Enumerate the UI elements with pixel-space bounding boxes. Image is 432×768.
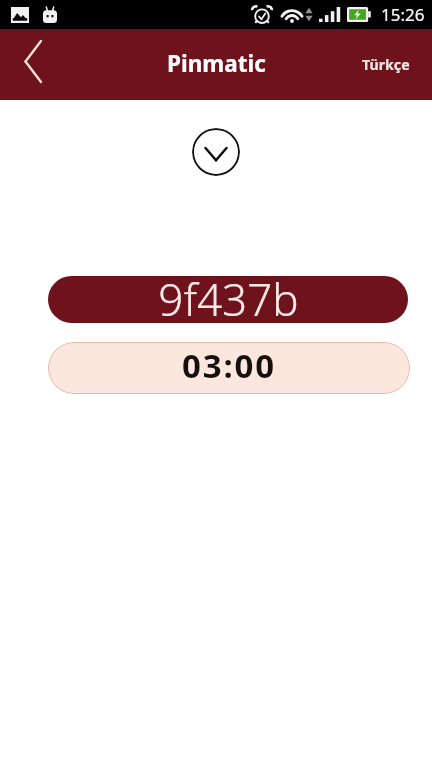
staticText: Türkçe — [362, 55, 410, 74]
staticText: Pinmatic — [167, 48, 266, 79]
staticText: 15:26 — [381, 3, 425, 26]
button[interactable]: 9f437b — [48, 276, 408, 323]
button[interactable]: Expand — [192, 128, 240, 176]
button[interactable]: Back — [0, 29, 66, 100]
staticText: 03:00 — [182, 343, 276, 388]
button[interactable]: 03:00 — [48, 342, 410, 394]
staticText: 9f437b — [158, 276, 299, 323]
button[interactable]: Türkçe — [362, 55, 410, 74]
